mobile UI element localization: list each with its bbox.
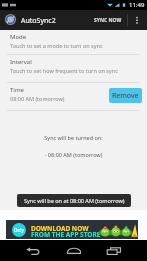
staticText: Touch to set how frequent to turn on syn… [10, 67, 118, 74]
staticText: Only [14, 227, 24, 233]
staticText: Touch to set a mode to turn on sync [10, 42, 103, 49]
staticText: - 08:00 AM (tomorrow) [0, 151, 147, 158]
button[interactable]: Interval [0, 54, 147, 82]
staticText: DOWNLOAD NOW [31, 224, 89, 233]
button[interactable]: Home [62, 243, 86, 258]
staticText: 08:00 AM (tomorrow) [10, 95, 65, 102]
staticText: Sync will be on at 08:00 AM (tomorrow) [24, 197, 125, 204]
staticText: Mode [10, 33, 27, 41]
staticText: Interval [10, 58, 32, 66]
staticText: Time [10, 86, 24, 94]
staticText: Sync will be turned on: [0, 134, 147, 141]
button[interactable]: Time [0, 82, 147, 110]
button[interactable]: SYNC NOW [89, 10, 126, 30]
staticText: AutoSync2 [21, 16, 56, 26]
staticText: FROM THE APP STORE [31, 230, 101, 239]
button[interactable]: More options [130, 10, 144, 30]
button[interactable]: Mode [0, 30, 147, 54]
button[interactable]: Back [21, 243, 45, 258]
staticText: 11:49 [129, 1, 145, 9]
button[interactable]: Recents [102, 243, 126, 258]
button[interactable]: Remove [109, 88, 142, 103]
button[interactable]: Advertisement [6, 220, 138, 239]
staticText: SYNC NOW [94, 17, 122, 24]
staticText: Remove [112, 91, 139, 101]
